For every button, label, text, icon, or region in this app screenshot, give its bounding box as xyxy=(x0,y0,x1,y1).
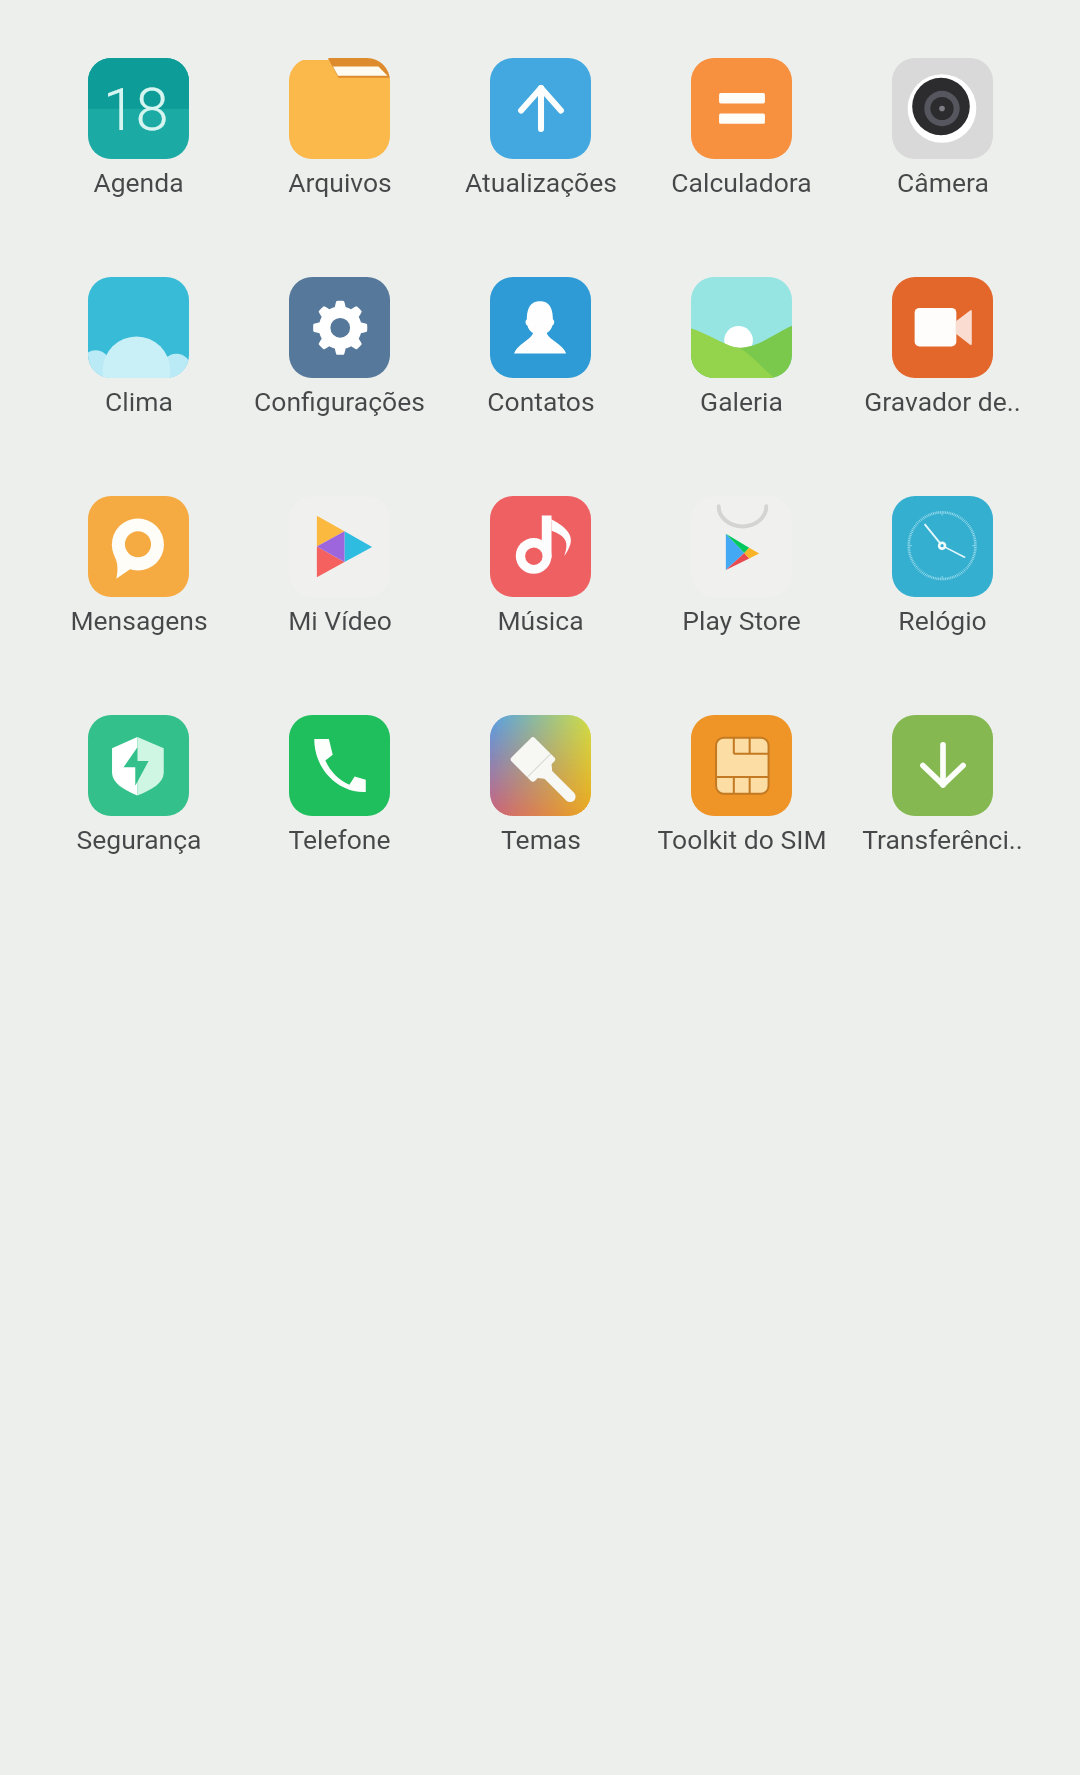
staticText: Clima xyxy=(105,386,173,417)
button[interactable]: Toolkit do SIM xyxy=(641,715,842,855)
staticText: Gravador de.. xyxy=(864,386,1021,417)
button[interactable]: Contatos xyxy=(440,277,641,417)
staticText: Transferênci.. xyxy=(862,824,1023,855)
staticText: Temas xyxy=(501,824,581,855)
button[interactable]: Transferências xyxy=(842,715,1043,855)
staticText: Música xyxy=(497,605,584,636)
staticText: Câmera xyxy=(897,167,989,198)
staticText: Arquivos xyxy=(288,167,392,198)
button[interactable]: Segurança xyxy=(38,715,239,855)
staticText: Relógio xyxy=(898,605,987,636)
button[interactable]: Câmera xyxy=(842,58,1043,198)
staticText: Mi Vídeo xyxy=(288,605,392,636)
staticText: Atualizações xyxy=(465,167,617,198)
staticText: Play Store xyxy=(682,605,801,636)
button[interactable]: Atualizações xyxy=(440,58,641,198)
button[interactable]: Mi Vídeo xyxy=(239,496,440,636)
button[interactable]: Relógio xyxy=(842,496,1043,636)
button[interactable]: Temas xyxy=(440,715,641,855)
button[interactable]: Configurações xyxy=(239,277,440,417)
button[interactable]: Calculadora xyxy=(641,58,842,198)
staticText: Contatos xyxy=(487,386,595,417)
button[interactable]: Clima xyxy=(38,277,239,417)
button[interactable]: Música xyxy=(440,496,641,636)
button[interactable]: Gravador de vídeo xyxy=(842,277,1043,417)
staticText: Agenda xyxy=(93,167,184,198)
staticText: Telefone xyxy=(288,824,391,855)
staticText: Toolkit do SIM xyxy=(657,824,827,855)
staticText: Calculadora xyxy=(671,167,812,198)
button[interactable]: Galeria xyxy=(641,277,842,417)
staticText: Galeria xyxy=(700,386,783,417)
staticText: Segurança xyxy=(76,824,202,855)
button[interactable]: Agenda xyxy=(38,58,239,198)
staticText: Configurações xyxy=(254,386,425,417)
staticText: 18 xyxy=(103,75,169,144)
button[interactable]: Play Store xyxy=(641,496,842,636)
button[interactable]: Mensagens xyxy=(38,496,239,636)
staticText: Mensagens xyxy=(70,605,208,636)
button[interactable]: Telefone xyxy=(239,715,440,855)
button[interactable]: Arquivos xyxy=(239,58,440,198)
